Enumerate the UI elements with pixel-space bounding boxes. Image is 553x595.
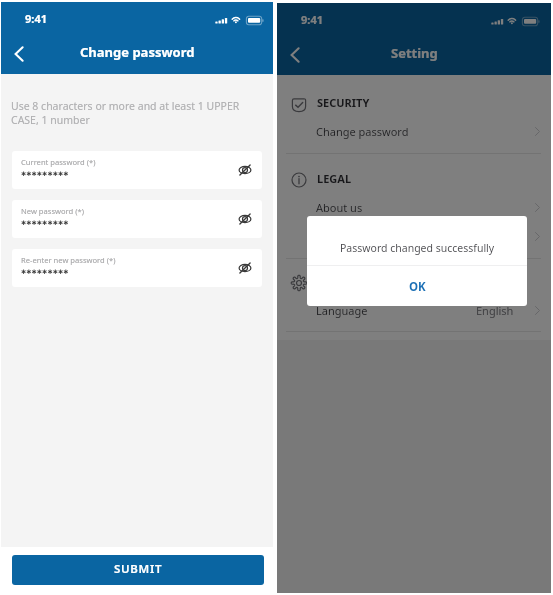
button[interactable]: Back (282, 39, 314, 71)
button[interactable]: New password (*) (12, 200, 262, 238)
staticText: 9:41 (301, 12, 323, 27)
staticText: LEGAL (317, 171, 352, 186)
staticText: ✱✱✱✱✱✱✱✱✱ (21, 219, 69, 226)
button[interactable]: OK (307, 266, 527, 306)
button[interactable]: Change password (277, 117, 551, 146)
staticText: ✱✱✱✱✱✱✱✱✱ (21, 268, 69, 275)
button[interactable]: Re-enter new password (*) (12, 249, 262, 287)
staticText: Current password (*) (21, 157, 96, 167)
staticText: Language (316, 303, 368, 318)
button[interactable]: Back (6, 38, 38, 70)
staticText: New password (*) (21, 206, 84, 216)
button[interactable]: About us (277, 193, 551, 222)
staticText: 9:41 (25, 11, 47, 26)
button[interactable]: Terms and conditions (277, 222, 551, 251)
staticText: English (476, 303, 514, 318)
button[interactable]: SUBMIT (12, 555, 264, 585)
button[interactable]: Current password (*) (12, 151, 262, 189)
staticText: Re-enter new password (*) (21, 255, 116, 265)
staticText: Use 8 characters or more and at least 1 … (11, 99, 257, 127)
button[interactable]: Toggle password visibility (234, 257, 256, 279)
staticText: OK (409, 279, 426, 295)
staticText: ✱✱✱✱✱✱✱✱✱ (21, 170, 69, 177)
button[interactable]: Language (277, 296, 551, 325)
staticText: Change password (316, 124, 409, 139)
staticText: Setting (391, 44, 438, 62)
staticText: About us (316, 200, 363, 215)
button[interactable]: Toggle password visibility (234, 159, 256, 181)
staticText: SUBMIT (114, 561, 163, 577)
button[interactable]: Toggle password visibility (234, 208, 256, 230)
staticText: Password changed successfully (340, 241, 495, 255)
staticText: Change password (80, 43, 195, 61)
staticText: SECURITY (317, 95, 370, 110)
